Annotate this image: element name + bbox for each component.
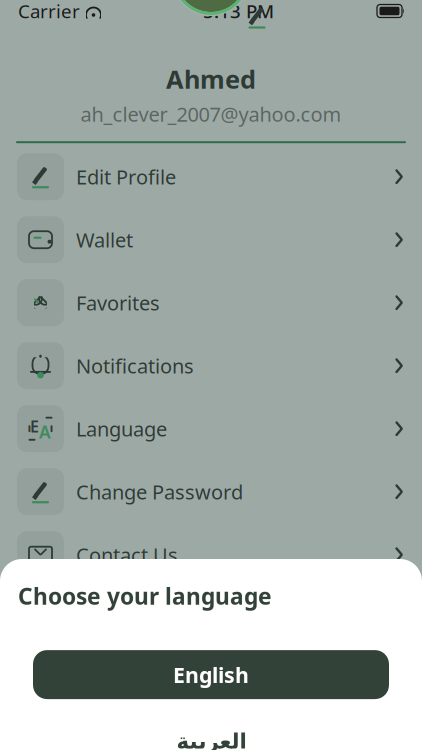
button[interactable]: Edit profile photo [244, 4, 270, 30]
staticText: Change Password [76, 478, 243, 505]
staticText: Ahmed [166, 62, 256, 96]
button[interactable]: العربية [33, 724, 389, 750]
button[interactable]: Change Password [0, 464, 422, 519]
staticText: Contact Us [76, 541, 178, 568]
staticText: Favorites [76, 289, 160, 316]
staticText: ah_clever_2007@yahoo.com [80, 101, 341, 127]
staticText: A [39, 420, 51, 443]
staticText: Choose your language [18, 581, 272, 611]
button[interactable]: Edit Profile [0, 149, 422, 204]
staticText: Edit Profile [76, 163, 176, 190]
staticText: Wallet [76, 226, 133, 253]
button[interactable]: E [0, 401, 422, 456]
button[interactable]: Contact Us [0, 527, 422, 582]
button[interactable]: Wallet [0, 212, 422, 267]
button[interactable]: Favorites [0, 275, 422, 330]
staticText: العربية [176, 729, 246, 750]
staticText: Carrier [18, 0, 80, 23]
staticText: E [30, 416, 39, 437]
staticText: English [173, 660, 249, 689]
staticText: Notifications [76, 352, 194, 379]
button[interactable]: English [33, 650, 389, 699]
button[interactable]: Notifications [0, 338, 422, 393]
staticText: 5:13 PM [203, 0, 274, 23]
staticText: Language [76, 415, 167, 442]
